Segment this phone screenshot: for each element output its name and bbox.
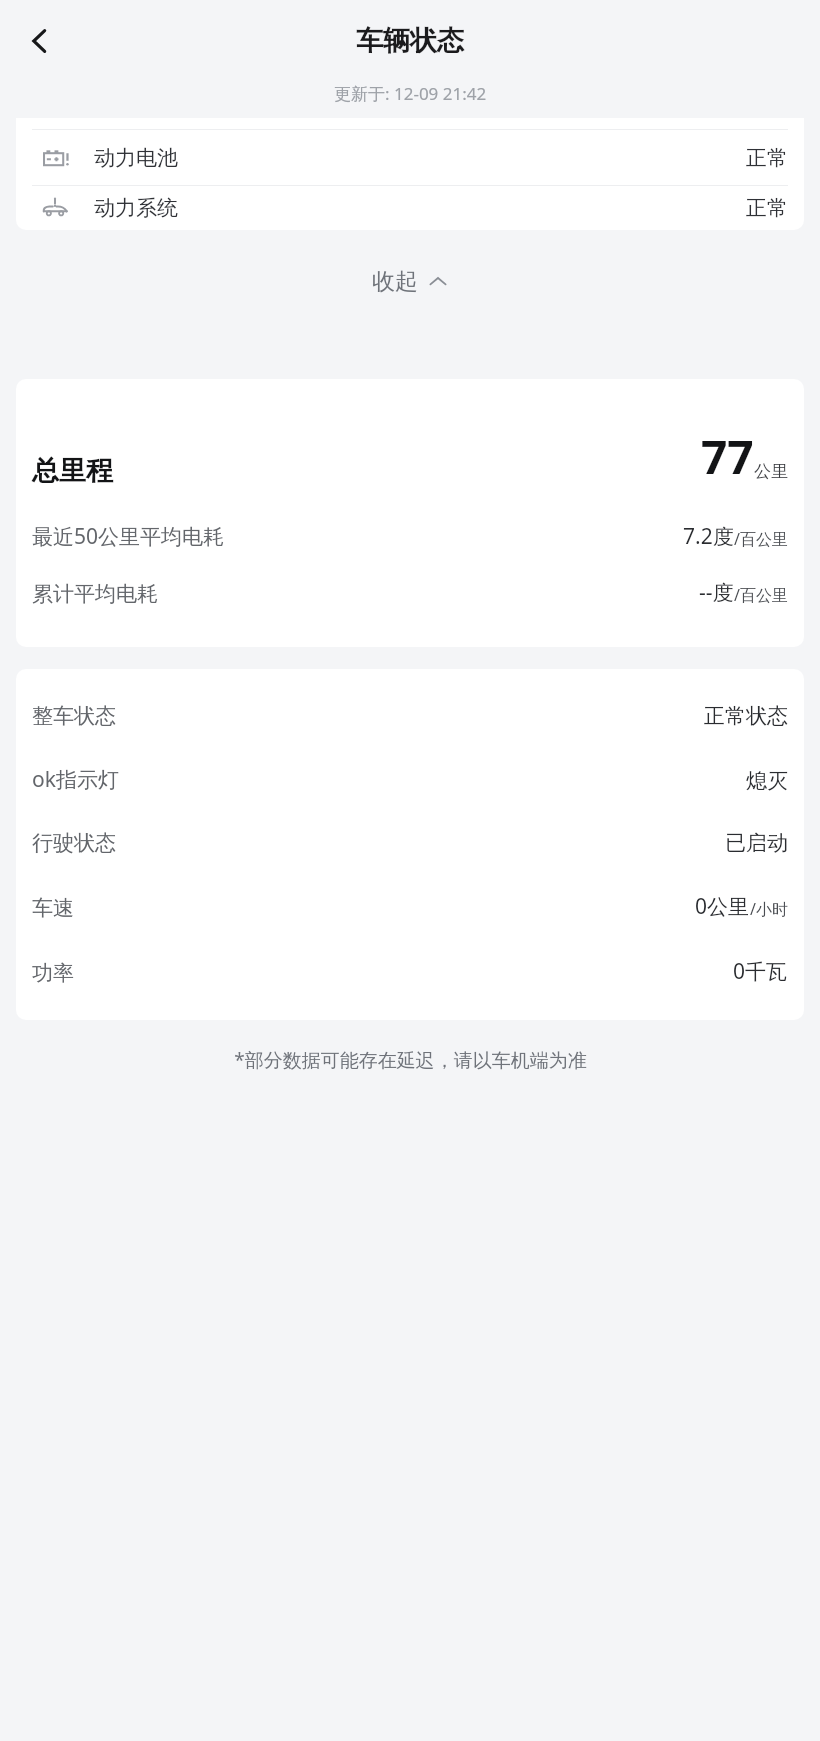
staticText: 最近50公里平均电耗 (32, 522, 225, 551)
staticText: 车速 (32, 895, 74, 921)
button[interactable]: 动力电池 (16, 130, 804, 185)
staticText: /百公里 (734, 528, 788, 550)
staticText: 行驶状态 (32, 830, 116, 856)
staticText: 公里 (754, 461, 788, 482)
staticText: 熄灭 (746, 768, 788, 794)
staticText: 77 (701, 425, 754, 488)
button[interactable]: 车速 (32, 892, 788, 921)
staticText: 车辆状态 (356, 24, 464, 58)
staticText: 功率 (32, 960, 74, 986)
staticText: 0公里 (695, 892, 750, 921)
staticText: 0千瓦 (733, 957, 788, 986)
staticText: 正常 (746, 195, 788, 221)
button[interactable]: 最近50公里平均电耗 (32, 522, 788, 551)
staticText: 动力系统 (94, 195, 178, 221)
staticText: 更新于: 12-09 21:42 (334, 82, 487, 105)
staticText: 收起 (372, 267, 418, 296)
staticText: 正常 (746, 145, 788, 171)
staticText: /百公里 (734, 584, 788, 606)
button[interactable]: 功率 (32, 957, 788, 986)
staticText: ok指示灯 (32, 765, 119, 794)
staticText: 正常状态 (704, 703, 788, 729)
staticText: *部分数据可能存在延迟，请以车机端为准 (234, 1047, 587, 1073)
button[interactable]: 收起 (0, 230, 820, 332)
staticText: 7.2度 (683, 522, 734, 551)
button[interactable]: Back (14, 15, 66, 67)
button[interactable]: ok指示灯 (32, 765, 788, 794)
staticText: /小时 (750, 898, 788, 920)
staticText: 已启动 (725, 830, 788, 856)
staticText: 累计平均电耗 (32, 581, 158, 607)
button[interactable]: 整车状态 (32, 703, 788, 729)
staticText: 动力电池 (94, 145, 178, 171)
staticText: 整车状态 (32, 703, 116, 729)
staticText: --度 (699, 578, 734, 607)
button[interactable]: 行驶状态 (32, 830, 788, 856)
button[interactable]: 累计平均电耗 (32, 578, 788, 607)
staticText: 总里程 (32, 454, 113, 488)
button[interactable]: 动力系统 (16, 186, 804, 230)
